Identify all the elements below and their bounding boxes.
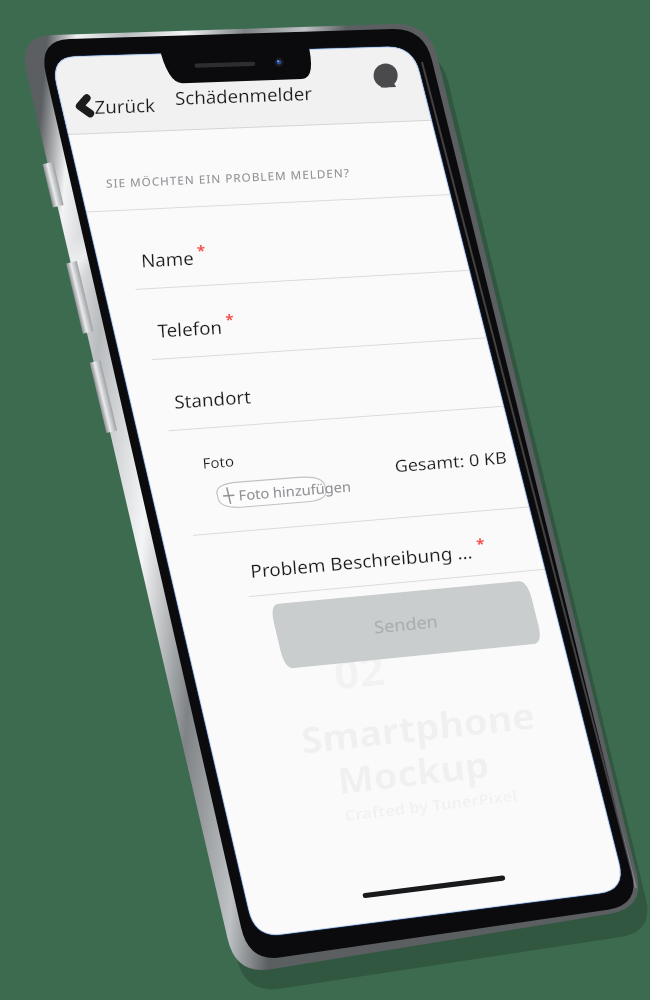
button[interactable]: Profil — [325, 30, 409, 75]
button[interactable]: Problem Beschreibung — [182, 562, 546, 612]
button[interactable]: Foto hinzufügen — [162, 480, 324, 520]
button[interactable]: Zurück — [32, 50, 162, 95]
button[interactable]: Standort — [110, 352, 513, 424]
button[interactable]: Senden — [214, 632, 565, 710]
button[interactable]: Name — [65, 195, 468, 267]
button[interactable]: Telefon — [91, 272, 494, 344]
